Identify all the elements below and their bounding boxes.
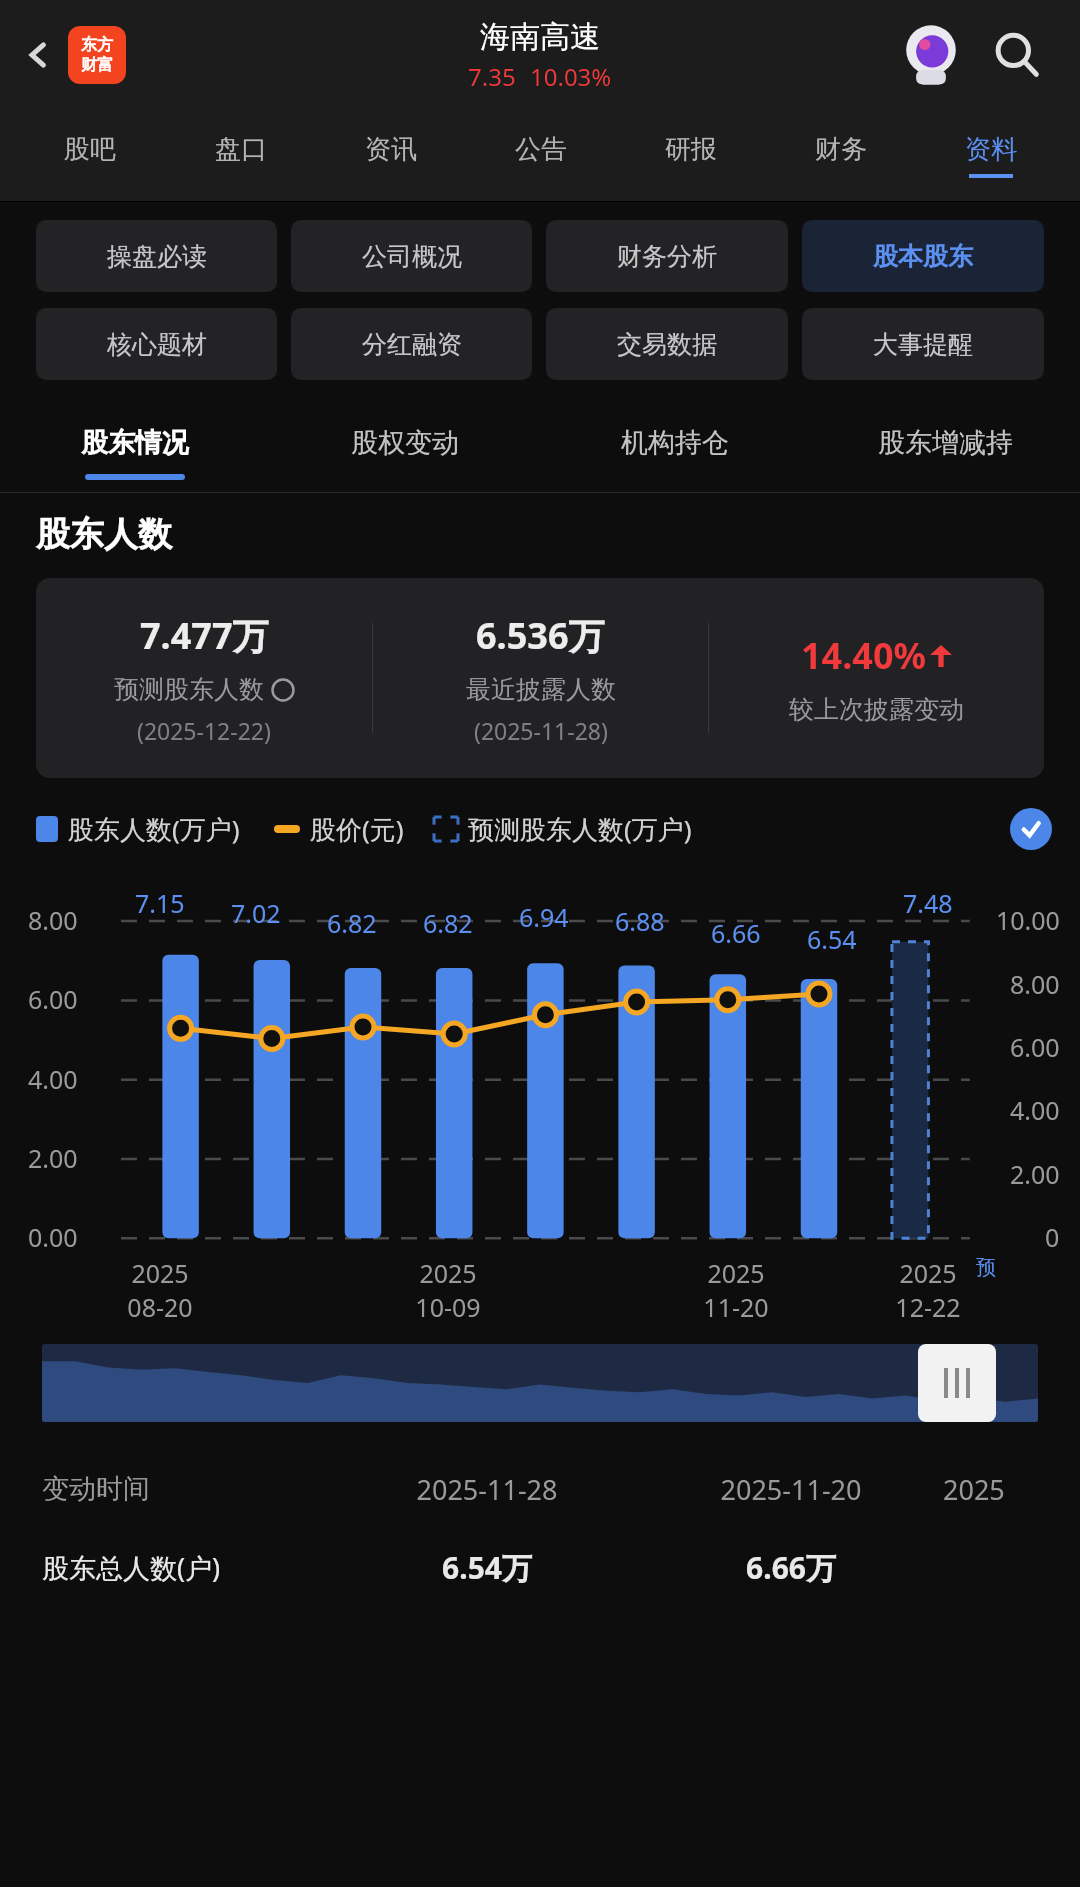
button[interactable]: 交易数据 bbox=[546, 308, 788, 380]
button[interactable]: 预测股东人数(万户) bbox=[434, 811, 692, 847]
button[interactable]: Toggle forecast bbox=[1010, 808, 1052, 850]
staticText: 机构持仓 bbox=[621, 426, 729, 460]
staticText: 6.54 bbox=[807, 922, 857, 956]
staticText: 股本股东 bbox=[873, 241, 973, 272]
staticText: 0.00 bbox=[28, 1220, 78, 1254]
staticText: 6.536万 bbox=[476, 611, 605, 660]
staticText: 财务 bbox=[815, 133, 867, 166]
button[interactable]: Back bbox=[10, 27, 66, 83]
staticText: 2025 12-22 bbox=[895, 1256, 961, 1324]
staticText: 2025 11-20 bbox=[703, 1256, 769, 1324]
staticText: 股东人数(万户) bbox=[68, 811, 240, 847]
button[interactable]: 机构持仓 bbox=[540, 398, 810, 492]
button[interactable]: 股本股东 bbox=[802, 220, 1044, 292]
staticText: 最近披露人数 bbox=[466, 674, 616, 705]
staticText: 变动时间 bbox=[42, 1472, 335, 1506]
button[interactable]: 盘口 bbox=[165, 110, 316, 201]
staticText: 6.66 bbox=[711, 916, 761, 950]
staticText: 交易数据 bbox=[617, 329, 717, 360]
staticText: 6.66万 bbox=[639, 1547, 943, 1588]
button[interactable]: 股东情况 bbox=[0, 398, 270, 492]
button[interactable]: 股价(元) bbox=[274, 811, 404, 847]
staticText: 2025 bbox=[943, 1471, 1080, 1508]
staticText: 预测股东人数 bbox=[114, 674, 264, 705]
staticText: 7.35 bbox=[468, 60, 516, 93]
staticText: 分红融资 bbox=[362, 329, 462, 360]
staticText: 核心题材 bbox=[107, 329, 207, 360]
staticText: 2.00 bbox=[28, 1141, 78, 1175]
button[interactable]: East Money logo bbox=[68, 26, 126, 84]
staticText: 预测股东人数(万户) bbox=[468, 811, 692, 847]
staticText: 海南高速 bbox=[480, 18, 600, 56]
staticText: 8.00 bbox=[1010, 967, 1060, 1001]
button[interactable]: 财务分析 bbox=[546, 220, 788, 292]
button[interactable]: 股东总人数(户) bbox=[0, 1528, 1080, 1606]
button[interactable]: 股东人数(万户) bbox=[36, 811, 240, 847]
staticText: 7.02 bbox=[231, 896, 281, 930]
button[interactable]: 资讯 bbox=[316, 110, 466, 201]
button[interactable]: Range handle bbox=[42, 1344, 1038, 1422]
button[interactable]: Search bbox=[982, 20, 1052, 90]
staticText: 股东总人数(户) bbox=[42, 1549, 335, 1586]
button[interactable]: 公司概况 bbox=[291, 220, 532, 292]
staticText: 股价(元) bbox=[310, 811, 404, 847]
staticText: 6.94 bbox=[519, 900, 569, 934]
staticText: 操盘必读 bbox=[107, 241, 207, 272]
staticText: 财务分析 bbox=[617, 241, 717, 272]
button[interactable]: 大事提醒 bbox=[802, 308, 1044, 380]
staticText: 10.00 bbox=[996, 903, 1060, 937]
staticText: 6.00 bbox=[1010, 1030, 1060, 1064]
staticText: 2.00 bbox=[1010, 1157, 1060, 1191]
button[interactable]: 研报 bbox=[616, 110, 766, 201]
button[interactable]: Range handle bbox=[918, 1344, 996, 1422]
staticText: 2025 08-20 bbox=[127, 1256, 193, 1324]
staticText: 8.00 bbox=[28, 903, 78, 937]
staticText: 东方 bbox=[81, 35, 113, 55]
button[interactable]: 股吧 bbox=[14, 110, 165, 201]
staticText: 14.40% bbox=[801, 631, 926, 680]
button[interactable]: 操盘必读 bbox=[36, 220, 277, 292]
button[interactable]: 分红融资 bbox=[291, 308, 532, 380]
staticText: 6.00 bbox=[28, 982, 78, 1016]
staticText: 6.54万 bbox=[335, 1547, 639, 1588]
staticText: 财富 bbox=[81, 55, 113, 75]
staticText: 6.82 bbox=[327, 906, 377, 940]
button[interactable]: Profile bbox=[900, 24, 962, 86]
staticText: 6.82 bbox=[423, 906, 473, 940]
button[interactable]: 7.477万 bbox=[36, 578, 1044, 778]
staticText: 预 bbox=[976, 1255, 996, 1280]
staticText: 7.477万 bbox=[140, 611, 269, 660]
staticText: 资讯 bbox=[365, 133, 417, 166]
staticText: 盘口 bbox=[215, 133, 267, 166]
button[interactable]: 公告 bbox=[466, 110, 616, 201]
staticText: 10.03% bbox=[530, 60, 612, 93]
staticText: 公司概况 bbox=[362, 241, 462, 272]
staticText: 股东情况 bbox=[81, 426, 189, 460]
button[interactable]: 核心题材 bbox=[36, 308, 277, 380]
staticText: 股东人数 bbox=[36, 513, 172, 556]
staticText: 6.88 bbox=[615, 904, 665, 938]
button[interactable]: 财务 bbox=[766, 110, 916, 201]
staticText: 4.00 bbox=[28, 1062, 78, 1096]
staticText: 股吧 bbox=[64, 133, 116, 166]
staticText: 资料 bbox=[965, 133, 1017, 166]
staticText: 研报 bbox=[665, 133, 717, 166]
staticText: 大事提醒 bbox=[873, 329, 973, 360]
staticText: (2025-11-28) bbox=[474, 715, 608, 746]
staticText: 股权变动 bbox=[351, 426, 459, 460]
staticText: 2025 10-09 bbox=[415, 1256, 481, 1324]
button[interactable]: 股东增减持 bbox=[810, 398, 1080, 492]
staticText: (2025-12-22) bbox=[137, 715, 271, 746]
staticText: 7.15 bbox=[135, 886, 185, 920]
button[interactable]: 变动时间 bbox=[0, 1450, 1080, 1528]
staticText: 7.48 bbox=[903, 886, 953, 920]
staticText: 2025-11-28 bbox=[335, 1471, 639, 1508]
staticText: 公告 bbox=[515, 133, 567, 166]
staticText: 较上次披露变动 bbox=[789, 694, 964, 725]
staticText: 4.00 bbox=[1010, 1093, 1060, 1127]
button[interactable]: 股权变动 bbox=[270, 398, 540, 492]
staticText: 2025-11-20 bbox=[639, 1471, 943, 1508]
staticText: 0 bbox=[1045, 1220, 1060, 1254]
button[interactable]: 资料 bbox=[916, 110, 1066, 201]
staticText: 股东增减持 bbox=[878, 426, 1013, 460]
